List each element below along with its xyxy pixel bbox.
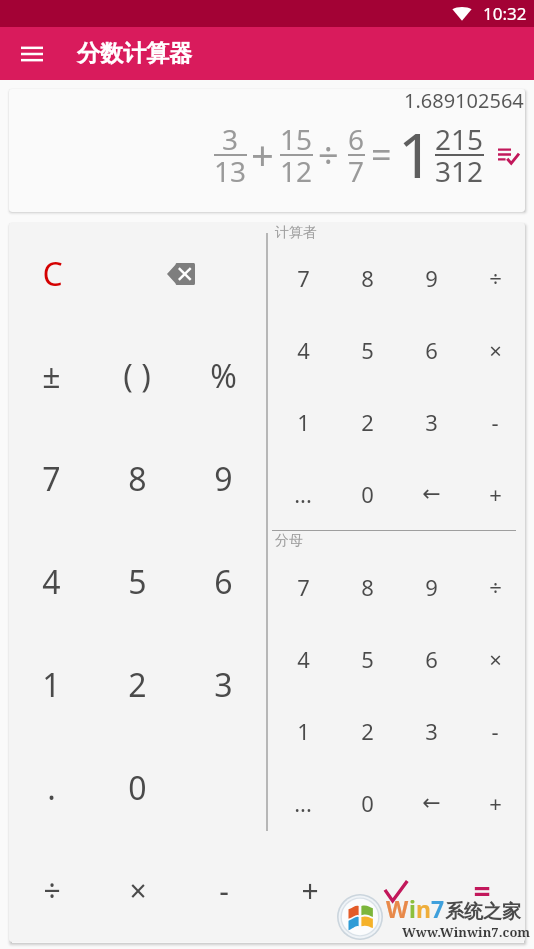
button[interactable]: 6: [180, 530, 266, 633]
staticText: 7: [297, 572, 310, 602]
staticText: 0: [361, 479, 374, 509]
staticText: -: [219, 870, 229, 911]
staticText: +: [489, 479, 502, 509]
button[interactable]: 5: [335, 623, 399, 695]
button[interactable]: 8: [335, 550, 399, 623]
button[interactable]: 7: [271, 242, 335, 314]
button[interactable]: 9: [399, 242, 463, 314]
button[interactable]: =: [439, 839, 525, 942]
staticText: i: [409, 893, 416, 924]
button[interactable]: 7: [271, 550, 335, 623]
staticText: 3: [425, 407, 438, 437]
button[interactable]: 3: [180, 633, 266, 736]
staticText: .: [47, 766, 56, 810]
button[interactable]: 5: [335, 314, 399, 386]
button[interactable]: .: [9, 736, 94, 839]
button[interactable]: 6: [399, 623, 463, 695]
button[interactable]: -: [463, 695, 525, 767]
staticText: 4: [42, 560, 61, 604]
button[interactable]: ×: [463, 314, 525, 386]
button[interactable]: 9: [180, 427, 266, 530]
staticText: n: [416, 893, 431, 924]
staticText: ÷: [489, 572, 502, 602]
staticText: W: [386, 893, 409, 924]
button[interactable]: 8: [94, 427, 180, 530]
button[interactable]: 4: [271, 623, 335, 695]
button[interactable]: ...: [271, 767, 335, 839]
button[interactable]: 2: [94, 633, 180, 736]
staticText: 1.689102564: [404, 89, 524, 114]
button[interactable]: 4: [9, 530, 94, 633]
staticText: 7: [297, 263, 310, 293]
staticText: 15: [280, 120, 313, 158]
button[interactable]: 3: [399, 386, 463, 458]
button[interactable]: ÷: [463, 550, 525, 623]
button[interactable]: ←: [399, 767, 463, 839]
staticText: 215: [435, 120, 484, 158]
staticText: ÷: [318, 130, 339, 179]
button[interactable]: 8: [335, 242, 399, 314]
button[interactable]: ...: [271, 458, 335, 530]
staticText: 3: [222, 120, 239, 158]
staticText: ←: [422, 790, 441, 816]
staticText: ÷: [43, 870, 61, 911]
staticText: C: [42, 252, 63, 296]
button[interactable]: 9: [399, 550, 463, 623]
button[interactable]: -: [181, 839, 267, 942]
button[interactable]: ←: [399, 458, 463, 530]
button[interactable]: 3: [399, 695, 463, 767]
button[interactable]: 4: [271, 314, 335, 386]
button[interactable]: 0: [94, 736, 180, 839]
staticText: 1: [398, 112, 434, 196]
staticText: 12: [280, 152, 313, 190]
staticText: 2: [361, 716, 374, 746]
staticText: 1: [297, 716, 310, 746]
staticText: 9: [425, 263, 438, 293]
button[interactable]: %: [180, 325, 266, 427]
button[interactable]: ×: [95, 839, 181, 942]
staticText: =: [371, 130, 392, 179]
button[interactable]: +: [267, 839, 353, 942]
button[interactable]: 1.689102564: [9, 89, 525, 212]
button[interactable]: ×: [463, 623, 525, 695]
staticText: 9: [214, 457, 233, 501]
button[interactable]: Backspace: [95, 223, 266, 325]
button[interactable]: Menu: [12, 34, 52, 74]
staticText: 10:32: [483, 2, 527, 25]
button[interactable]: 0: [335, 767, 399, 839]
staticText: 7: [348, 152, 365, 190]
button[interactable]: 1: [271, 695, 335, 767]
button[interactable]: 6: [399, 314, 463, 386]
button[interactable]: ÷: [463, 242, 525, 314]
button[interactable]: +: [463, 767, 525, 839]
staticText: 9: [425, 572, 438, 602]
button[interactable]: 1: [9, 633, 94, 736]
staticText: 3: [425, 716, 438, 746]
button[interactable]: -: [463, 386, 525, 458]
button[interactable]: ±: [9, 325, 94, 427]
staticText: 分母: [275, 532, 303, 550]
button[interactable]: C: [9, 223, 95, 325]
button[interactable]: 2: [335, 695, 399, 767]
staticText: ÷: [489, 263, 502, 293]
staticText: ←: [422, 481, 441, 507]
button[interactable]: ( ): [94, 325, 180, 427]
button[interactable]: Confirm: [353, 839, 439, 942]
button[interactable]: 5: [94, 530, 180, 633]
button[interactable]: History: [498, 144, 519, 165]
button[interactable]: ÷: [9, 839, 95, 942]
staticText: 2: [361, 407, 374, 437]
staticText: 5: [361, 644, 374, 674]
button[interactable]: 7: [9, 427, 94, 530]
staticText: ( ): [123, 354, 151, 398]
staticText: 系统之家: [445, 900, 521, 924]
button[interactable]: 1: [271, 386, 335, 458]
staticText: 6: [425, 644, 438, 674]
staticText: %: [210, 354, 237, 398]
button[interactable]: +: [463, 458, 525, 530]
staticText: ×: [489, 335, 502, 365]
button[interactable]: 0: [335, 458, 399, 530]
staticText: ×: [129, 870, 147, 911]
button[interactable]: 2: [335, 386, 399, 458]
